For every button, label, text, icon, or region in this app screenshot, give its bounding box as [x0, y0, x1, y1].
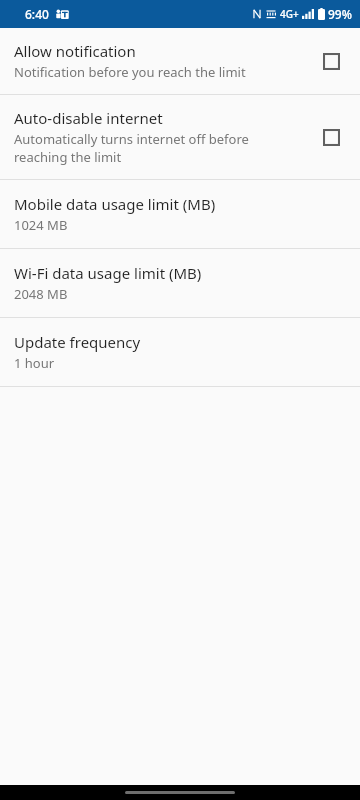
- button[interactable]: Auto-disable internet: [316, 122, 346, 152]
- staticText: Update frequency: [14, 332, 141, 352]
- staticText: 1024 MB: [14, 216, 68, 234]
- staticText: 1 hour: [14, 354, 55, 372]
- staticText: 6:40: [25, 6, 49, 22]
- button[interactable]: Wi-Fi data usage limit (MB): [0, 249, 360, 317]
- staticText: 4G+: [280, 7, 299, 21]
- staticText: Wi-Fi data usage limit (MB): [14, 263, 202, 283]
- button[interactable]: Allow notification: [316, 46, 346, 76]
- staticText: Allow notification: [14, 41, 136, 61]
- button[interactable]: Update frequency: [0, 318, 360, 386]
- button[interactable]: Mobile data usage limit (MB): [0, 180, 360, 248]
- button[interactable]: Auto-disable internet: [0, 95, 360, 179]
- staticText: 99%: [328, 6, 352, 22]
- staticText: Auto-disable internet: [14, 108, 163, 128]
- staticText: Automatically turns internet off before …: [14, 130, 304, 166]
- button[interactable]: Allow notification: [0, 28, 360, 94]
- staticText: Mobile data usage limit (MB): [14, 194, 216, 214]
- staticText: Notification before you reach the limit: [14, 63, 246, 81]
- other: Home gesture: [125, 791, 235, 794]
- staticText: 2048 MB: [14, 285, 68, 303]
